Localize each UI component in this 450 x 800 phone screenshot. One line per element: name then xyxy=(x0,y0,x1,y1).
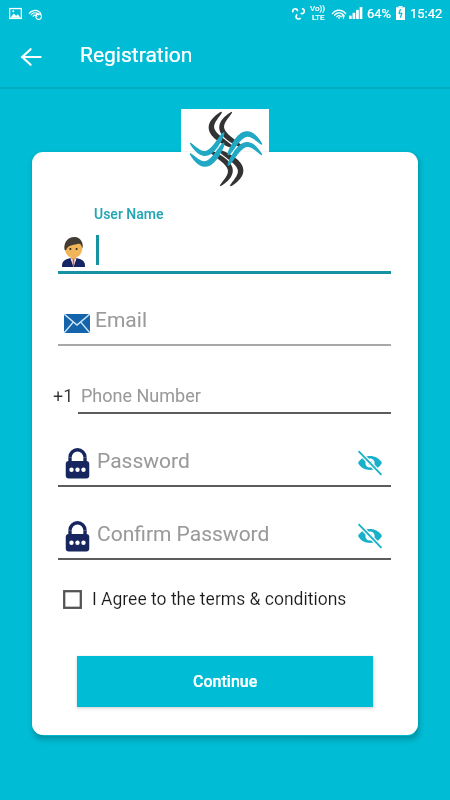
staticText: User Name xyxy=(94,206,164,222)
button[interactable]: I Agree to the terms & conditions xyxy=(63,581,375,617)
staticText: Password xyxy=(97,449,190,474)
staticText: +1 xyxy=(53,385,74,406)
button[interactable]: Back xyxy=(7,33,55,81)
button[interactable]: Show confirm password xyxy=(349,519,391,553)
staticText: LTE xyxy=(312,13,325,22)
staticText: 64% xyxy=(367,6,392,21)
staticText: Continue xyxy=(193,672,258,691)
button[interactable]: User Name xyxy=(58,200,391,274)
staticText: Phone Number xyxy=(81,385,201,406)
button[interactable]: Password xyxy=(58,445,391,484)
button[interactable]: Confirm Password xyxy=(58,518,391,557)
staticText: Vo)) xyxy=(310,4,326,13)
staticText: I Agree to the terms & conditions xyxy=(92,589,347,610)
staticText: 15:42 xyxy=(410,6,443,21)
staticText: Email xyxy=(95,308,147,333)
button[interactable]: Email xyxy=(58,305,391,343)
button[interactable]: Show password xyxy=(349,446,391,480)
staticText: Registration xyxy=(80,43,193,68)
button[interactable]: Continue xyxy=(77,656,373,707)
button[interactable]: +1 xyxy=(58,383,391,413)
staticText: Confirm Password xyxy=(97,522,270,547)
